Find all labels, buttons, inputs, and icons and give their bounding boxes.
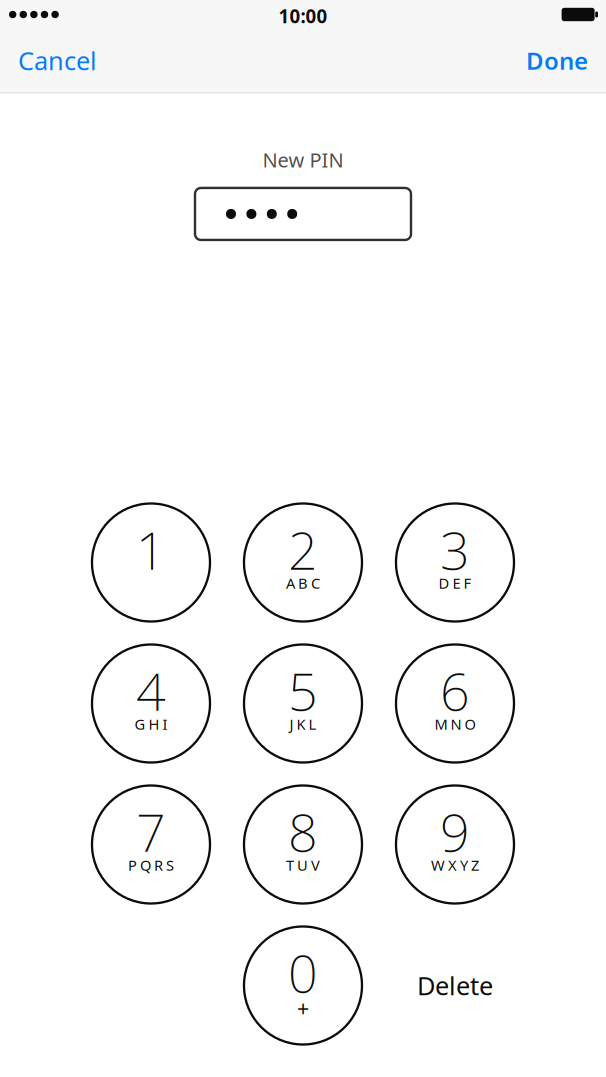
staticText: MNO: [434, 714, 475, 734]
staticText: GHI: [134, 714, 167, 734]
staticText: DEF: [438, 573, 471, 593]
button[interactable]: 1: [75, 492, 227, 633]
staticText: +: [297, 994, 309, 1022]
staticText: 6: [440, 656, 470, 725]
staticText: 5: [288, 656, 318, 725]
button[interactable]: 4: [75, 633, 227, 774]
staticText: 3: [440, 515, 470, 584]
button[interactable]: 8: [227, 774, 379, 915]
staticText: 4: [136, 656, 166, 725]
staticText: 10:00: [278, 4, 327, 28]
button[interactable]: 5: [227, 633, 379, 774]
button[interactable]: 6: [379, 633, 531, 774]
staticText: 9: [440, 797, 470, 866]
button[interactable]: Delete: [379, 915, 531, 1056]
staticText: 8: [288, 797, 318, 866]
staticText: ABC: [286, 573, 320, 593]
button[interactable]: 9: [379, 774, 531, 915]
staticText: Done: [526, 45, 588, 76]
staticText: Delete: [417, 969, 493, 1002]
staticText: 7: [136, 797, 166, 866]
staticText: New PIN: [262, 146, 343, 173]
button[interactable]: Done: [508, 29, 606, 92]
button[interactable]: Cancel: [0, 29, 115, 92]
button[interactable]: 2: [227, 492, 379, 633]
staticText: TUV: [286, 855, 320, 875]
button[interactable]: 7: [75, 774, 227, 915]
staticText: 1: [136, 515, 166, 584]
staticText: WXYZ: [431, 855, 479, 875]
staticText: 0: [288, 938, 318, 1007]
staticText: PQRS: [128, 855, 174, 875]
button[interactable]: 0: [227, 915, 379, 1056]
button[interactable]: 3: [379, 492, 531, 633]
staticText: JKL: [289, 714, 316, 734]
staticText: 2: [288, 515, 318, 584]
staticText: Cancel: [18, 44, 97, 77]
